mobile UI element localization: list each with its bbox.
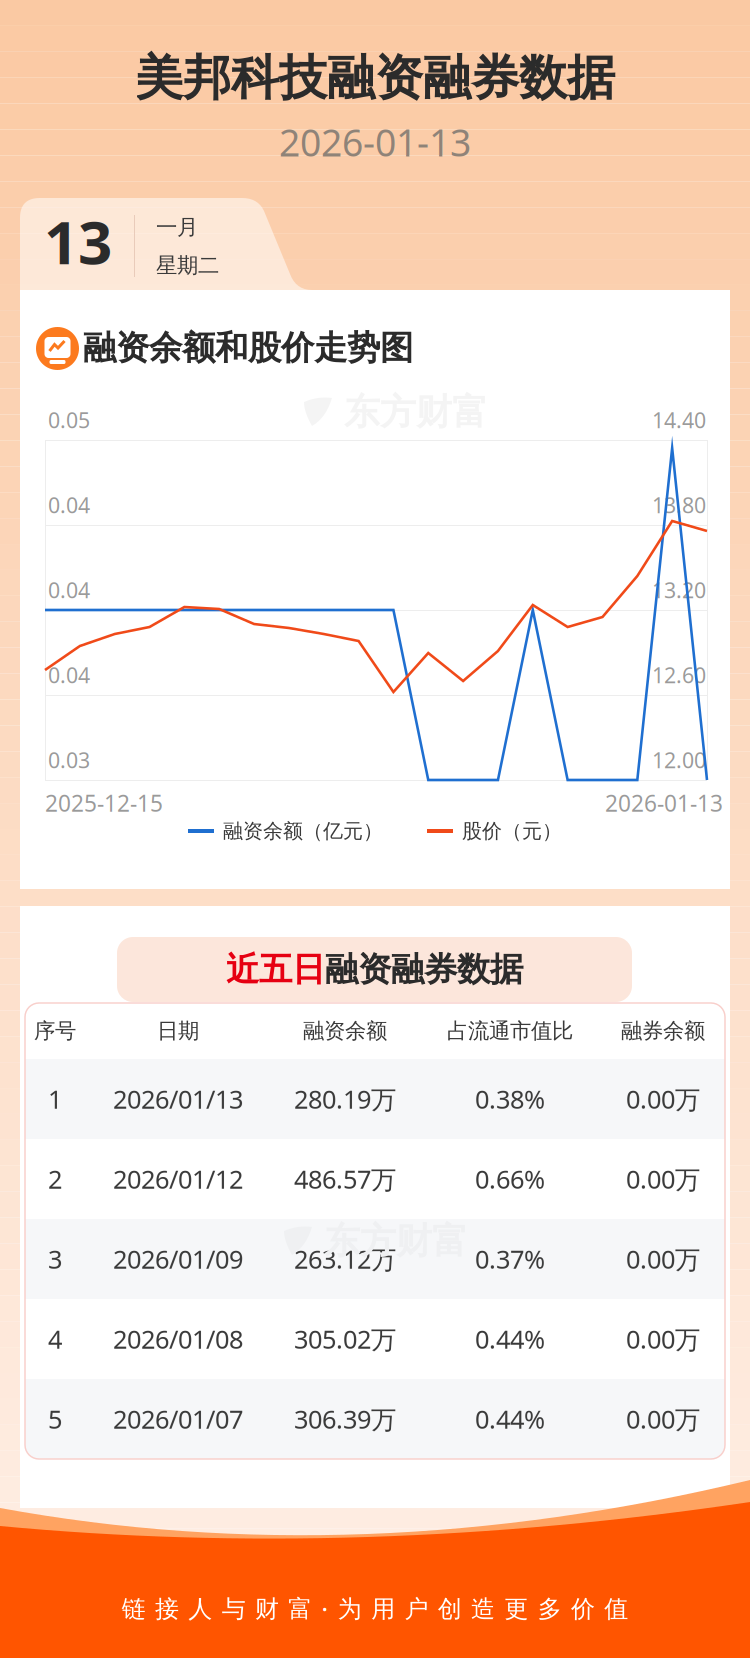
- staticText: 0.44%: [475, 1322, 545, 1356]
- staticText: 更: [504, 1594, 528, 1624]
- staticText: 户: [404, 1594, 428, 1624]
- staticText: 融券余额: [621, 1018, 705, 1044]
- staticText: 0.00万: [626, 1322, 700, 1356]
- staticText: 0.00万: [626, 1402, 700, 1436]
- staticText: 280.19万: [294, 1082, 396, 1116]
- staticText: 近五日: [226, 949, 325, 990]
- staticText: 0.03: [48, 746, 90, 774]
- staticText: 4: [48, 1322, 62, 1356]
- staticText: 13.80: [652, 491, 706, 519]
- staticText: 2026/01/08: [113, 1322, 243, 1356]
- staticText: 0.00万: [626, 1082, 700, 1116]
- staticText: 接: [155, 1594, 179, 1624]
- staticText: 0.00万: [626, 1162, 700, 1196]
- staticText: 股价（元）: [462, 819, 562, 843]
- staticText: 3: [48, 1242, 62, 1276]
- staticText: 0.04: [48, 661, 90, 689]
- staticText: 306.39万: [294, 1402, 396, 1436]
- staticText: 2025-12-15: [45, 788, 163, 818]
- staticText: 星期二: [156, 252, 219, 278]
- staticText: 13: [44, 201, 112, 281]
- staticText: 创: [438, 1594, 462, 1624]
- staticText: 2026-01-13: [279, 117, 471, 167]
- staticText: 12.00: [652, 746, 706, 774]
- staticText: 2026-01-13: [605, 788, 723, 818]
- staticText: 融资融券数据: [325, 949, 523, 990]
- staticText: 多: [538, 1594, 562, 1624]
- staticText: 东方财富: [324, 1219, 468, 1263]
- staticText: 占流通市值比: [447, 1018, 573, 1044]
- staticText: 263.12万: [294, 1242, 396, 1276]
- staticText: 值: [604, 1594, 628, 1624]
- staticText: 305.02万: [294, 1322, 396, 1356]
- staticText: 为: [338, 1594, 362, 1624]
- staticText: 东方财富: [344, 390, 488, 434]
- staticText: 0.38%: [475, 1082, 545, 1116]
- staticText: 0.04: [48, 491, 90, 519]
- staticText: 0.05: [48, 406, 90, 434]
- staticText: 一月: [156, 214, 198, 240]
- staticText: 0.37%: [475, 1242, 545, 1276]
- staticText: 造: [471, 1594, 495, 1624]
- staticText: 富: [288, 1594, 312, 1624]
- staticText: 13.20: [652, 576, 706, 604]
- staticText: 融资余额: [303, 1018, 387, 1044]
- staticText: 财: [255, 1594, 279, 1624]
- staticText: ·: [322, 1593, 329, 1625]
- staticText: 0.00万: [626, 1242, 700, 1276]
- staticText: 2026/01/12: [113, 1162, 243, 1196]
- staticText: 486.57万: [294, 1162, 396, 1196]
- staticText: 价: [571, 1594, 595, 1624]
- staticText: 0.44%: [475, 1402, 545, 1436]
- staticText: 融资余额（亿元）: [223, 819, 383, 843]
- staticText: 2026/01/07: [113, 1402, 243, 1436]
- staticText: 序号: [34, 1018, 76, 1044]
- staticText: 日期: [157, 1018, 199, 1044]
- staticText: 1: [48, 1082, 62, 1116]
- staticText: 0.66%: [475, 1162, 545, 1196]
- staticText: 2: [48, 1162, 62, 1196]
- staticText: 用: [371, 1594, 395, 1624]
- staticText: 5: [48, 1402, 62, 1436]
- staticText: 与: [222, 1594, 246, 1624]
- staticText: 人: [188, 1594, 212, 1624]
- staticText: 2026/01/13: [113, 1082, 243, 1116]
- staticText: 12.60: [652, 661, 706, 689]
- staticText: 0.04: [48, 576, 90, 604]
- staticText: 美邦科技融资融券数据: [135, 48, 615, 107]
- staticText: 链: [122, 1594, 146, 1624]
- staticText: 融资余额和股价走势图: [83, 327, 413, 368]
- staticText: 14.40: [652, 406, 706, 434]
- staticText: 2026/01/09: [113, 1242, 243, 1276]
